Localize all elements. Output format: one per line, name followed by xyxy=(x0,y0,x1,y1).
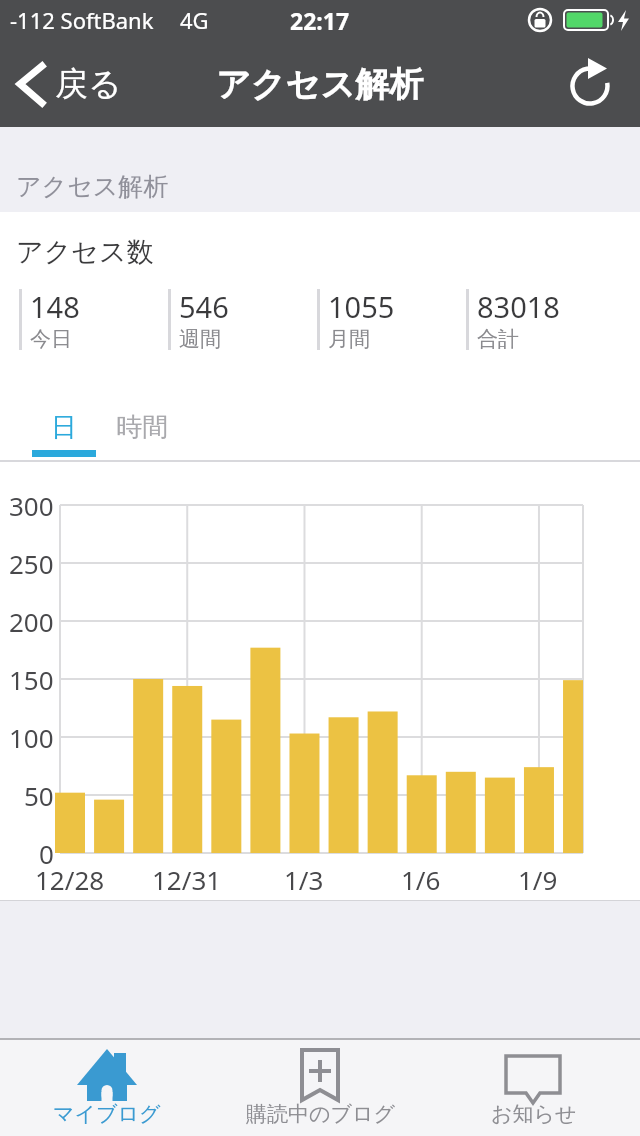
button[interactable]: 日 xyxy=(32,403,96,451)
button[interactable] xyxy=(556,50,626,120)
staticText: 50 xyxy=(24,778,54,813)
staticText: 日 xyxy=(51,411,77,444)
button[interactable]: 戻る xyxy=(0,45,150,123)
staticText: 戻る xyxy=(55,63,122,105)
staticText: 200 xyxy=(9,604,54,639)
staticText: 150 xyxy=(9,662,54,697)
staticText: 22:17 xyxy=(290,5,350,36)
staticText: 300 xyxy=(9,488,54,523)
staticText: 12/28 xyxy=(35,862,105,897)
staticText: 546 xyxy=(179,287,229,326)
staticText: アクセス解析 xyxy=(16,171,169,202)
staticText: 月間 xyxy=(328,326,370,352)
staticText: 0 xyxy=(39,836,54,871)
staticText: 148 xyxy=(30,287,80,326)
staticText: 12/31 xyxy=(152,862,222,897)
staticText: アクセス解析 xyxy=(216,63,424,106)
staticText: 1/6 xyxy=(401,862,441,897)
staticText: 時間 xyxy=(116,411,168,444)
staticText: お知らせ xyxy=(491,1101,577,1127)
staticText: 1/3 xyxy=(284,862,324,897)
staticText: 83018 xyxy=(477,287,560,326)
staticText: 週間 xyxy=(179,326,221,352)
staticText: 今日 xyxy=(30,326,72,352)
button[interactable]: マイブログ xyxy=(0,1040,214,1136)
staticText: 4G xyxy=(180,5,209,35)
staticText: 合計 xyxy=(477,326,519,352)
staticText: アクセス数 xyxy=(16,235,154,269)
button[interactable]: 時間 xyxy=(108,403,176,451)
button[interactable]: 購読中のブログ xyxy=(214,1040,427,1136)
staticText: 1/9 xyxy=(518,862,558,897)
staticText: -112 SoftBank xyxy=(10,5,154,35)
staticText: 250 xyxy=(9,546,54,581)
button[interactable]: お知らせ xyxy=(427,1040,640,1136)
staticText: 100 xyxy=(9,720,54,755)
staticText: 1055 xyxy=(328,287,395,326)
staticText: 購読中のブログ xyxy=(246,1101,395,1127)
staticText: マイブログ xyxy=(53,1101,161,1127)
